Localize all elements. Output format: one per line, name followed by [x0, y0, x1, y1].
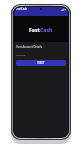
- staticText: NEXT: [37, 61, 45, 65]
- staticText: Fast: [29, 26, 40, 33]
- staticText: Cash: [40, 26, 53, 33]
- staticText: Your Account Details: [16, 45, 66, 49]
- staticText: FastCash: [16, 7, 28, 11]
- button[interactable]: NEXT: [16, 60, 66, 66]
- staticText: Amount: [16, 53, 66, 56]
